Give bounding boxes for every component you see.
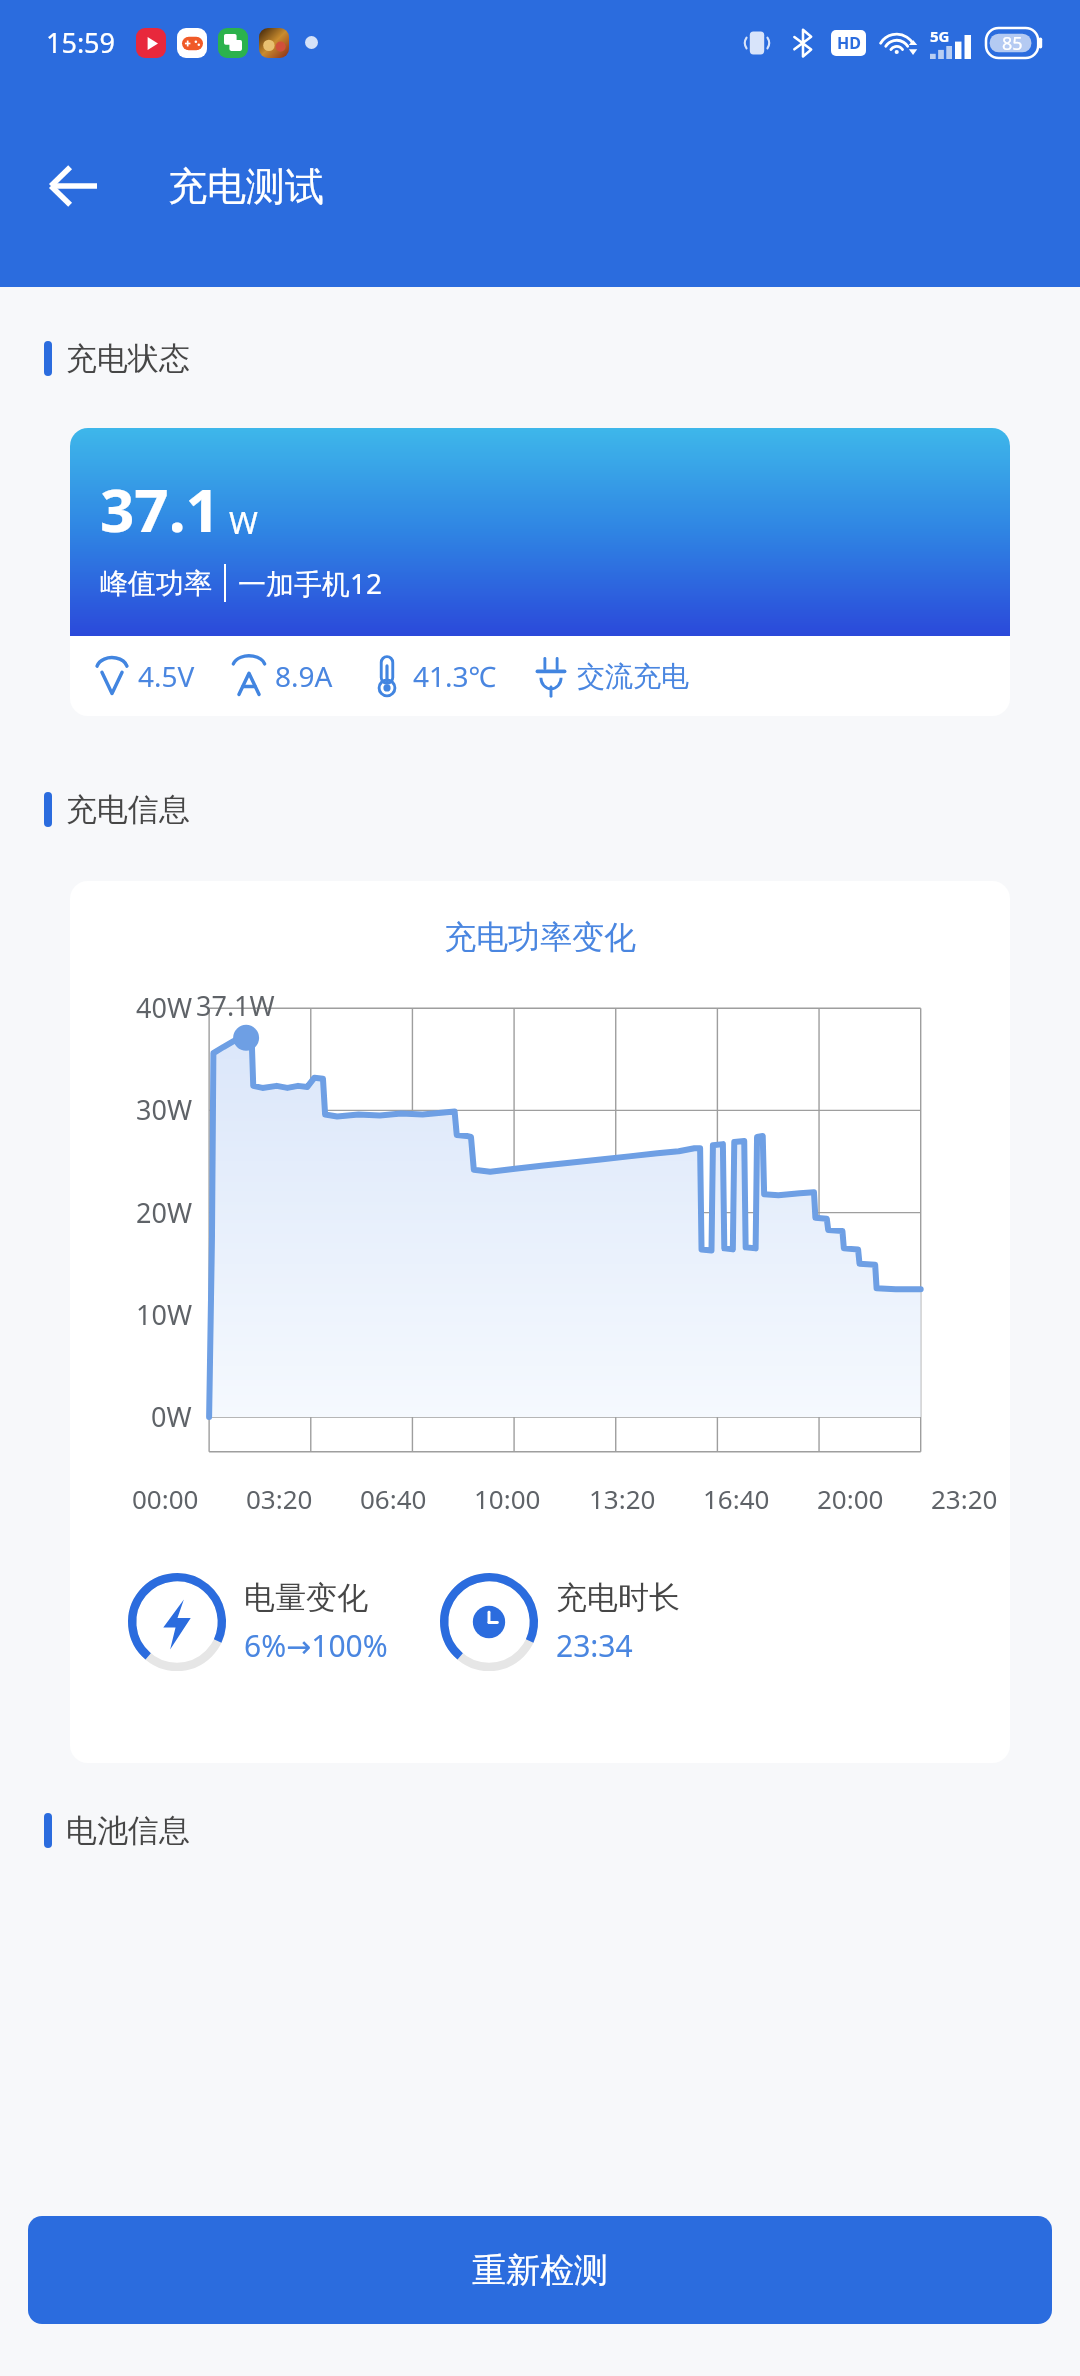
staticText: 20:00 [817,1481,884,1516]
staticText: 40W [136,989,192,1026]
staticText: 一加手机12 [238,564,383,602]
staticText: 充电信息 [66,790,190,829]
staticText: 5G [930,26,950,46]
staticText: 06:40 [360,1481,427,1516]
staticText: 电量变化 [244,1578,368,1617]
staticText: 电池信息 [66,1811,190,1850]
staticText: 23:34 [556,1625,633,1666]
staticText: 20W [136,1194,192,1231]
staticText: 8.9A [275,657,333,695]
staticText: 6%→100% [244,1625,388,1666]
button[interactable]: 4.5V [94,653,195,699]
button[interactable]: 重新检测 [28,2216,1052,2324]
staticText: 10:00 [474,1481,541,1516]
staticText: 重新检测 [472,2249,608,2292]
staticText: 37.1 [100,468,220,550]
staticText: 充电时长 [556,1578,680,1617]
button[interactable]: 充电时长 [440,1573,680,1671]
staticText: 85 [1002,31,1023,56]
staticText: 10W [136,1296,192,1333]
staticText: 15:59 [46,24,116,61]
button[interactable]: 交流充电 [533,653,689,699]
button[interactable]: 电量变化 [128,1573,388,1671]
staticText: 03:20 [246,1481,313,1516]
staticText: 4.5V [138,657,195,695]
staticText: 充电测试 [168,162,324,211]
staticText: 充电状态 [66,339,190,378]
staticText: 00:00 [132,1481,199,1516]
button[interactable]: 37.1 [70,428,1010,716]
staticText: 交流充电 [577,659,689,694]
staticText: 0W [151,1398,192,1435]
staticText: 37.1W [196,987,275,1024]
button[interactable]: 41.3℃ [369,653,497,699]
staticText: 41.3℃ [413,657,497,695]
staticText: 充电功率变化 [444,917,636,957]
staticText: W [229,501,258,543]
staticText: 30W [136,1091,192,1128]
staticText: 峰值功率 [100,566,212,601]
staticText: 23:20 [931,1481,998,1516]
button[interactable]: Back [24,137,122,235]
staticText: 13:20 [589,1481,656,1516]
staticText: HD [837,32,861,54]
button[interactable]: 8.9A [231,653,333,699]
staticText: 16:40 [703,1481,770,1516]
